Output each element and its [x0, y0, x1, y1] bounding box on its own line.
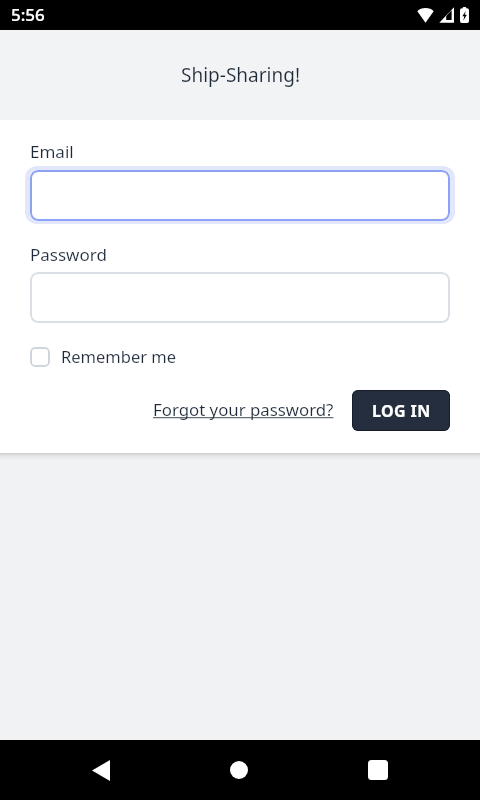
button[interactable]: Password input field — [30, 272, 450, 323]
button[interactable]: Home — [215, 746, 263, 794]
staticText: Email — [30, 140, 74, 163]
button[interactable]: Recent apps — [354, 746, 402, 794]
staticText: LOG IN — [372, 400, 431, 422]
staticText: 5:56 — [11, 3, 45, 26]
staticText: Forgot your password? — [153, 398, 334, 421]
staticText: Ship-Sharing! — [181, 62, 300, 88]
button[interactable]: Forgot your password? — [145, 390, 342, 429]
staticText: Password — [30, 243, 107, 266]
button[interactable]: Email input field — [30, 170, 450, 221]
staticText: Remember me — [61, 345, 177, 365]
button[interactable]: Remember me — [30, 345, 177, 365]
button[interactable]: Back — [77, 746, 125, 794]
button[interactable]: LOG IN — [352, 390, 450, 431]
